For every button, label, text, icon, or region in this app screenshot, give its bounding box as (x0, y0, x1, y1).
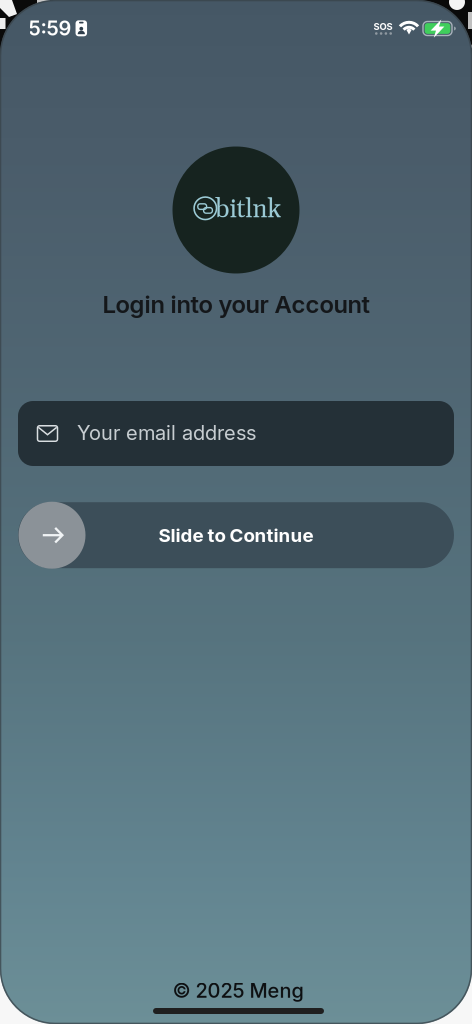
staticText: © 2025 Meng (172, 979, 303, 1002)
button[interactable]: Your email address (18, 401, 454, 466)
staticText: Login into your Account (102, 290, 369, 318)
staticText: bitlnk (215, 194, 281, 226)
staticText: SOS (373, 21, 392, 32)
staticText: Slide to Continue (158, 524, 313, 546)
staticText: 5:59 (28, 16, 71, 40)
staticText: Your email address (77, 421, 256, 445)
button[interactable]: Slide to Continue (18, 501, 454, 569)
